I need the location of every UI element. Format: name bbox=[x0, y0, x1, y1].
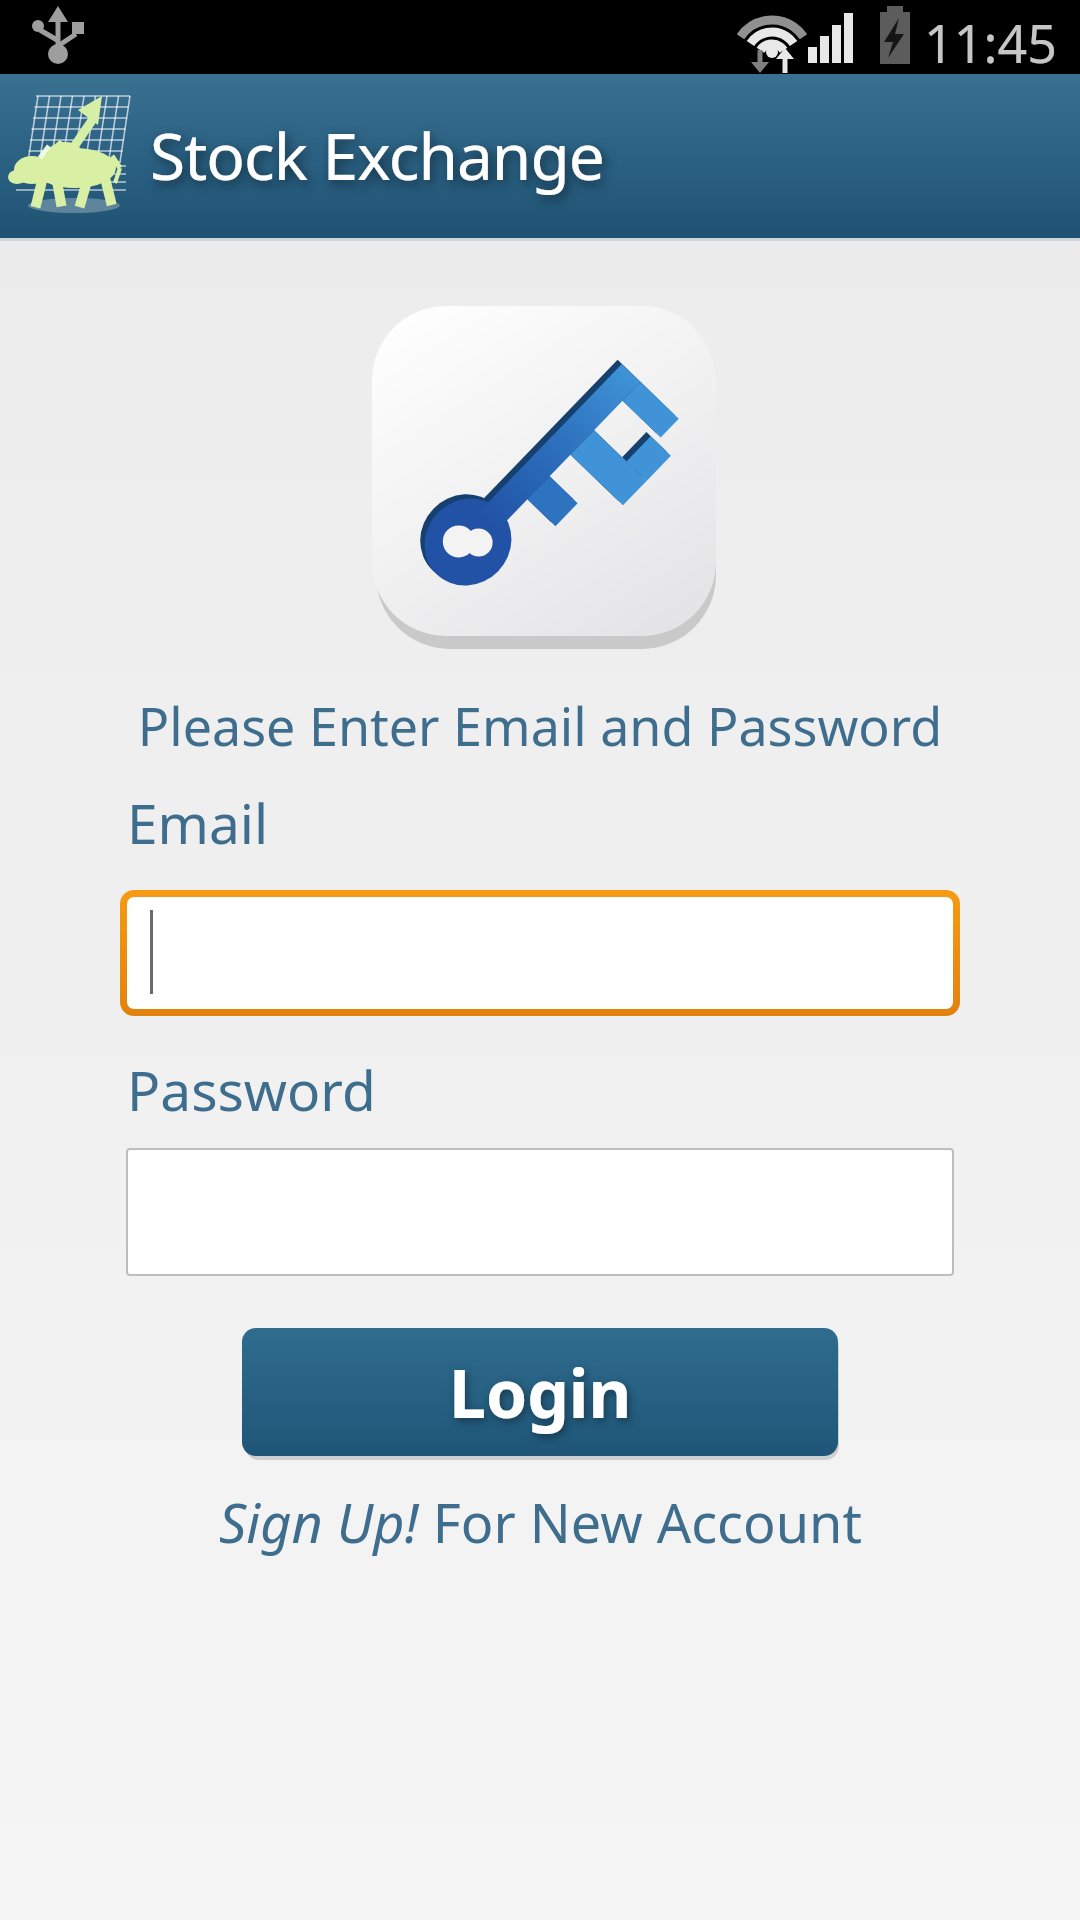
staticText: Password bbox=[127, 1052, 376, 1127]
staticText: Please Enter Email and Password bbox=[0, 690, 1080, 761]
staticText: Login bbox=[449, 1347, 632, 1437]
staticText: Stock Exchange bbox=[150, 112, 604, 199]
button[interactable] bbox=[120, 890, 960, 1016]
staticText: 11:45 bbox=[924, 7, 1057, 78]
button[interactable] bbox=[126, 1148, 954, 1276]
staticText: Email bbox=[127, 785, 269, 860]
staticText: Sign Up! For New Account bbox=[219, 1485, 862, 1559]
button[interactable]: Sign Up! For New Account bbox=[0, 1485, 1080, 1559]
button[interactable]: Login bbox=[242, 1328, 838, 1456]
